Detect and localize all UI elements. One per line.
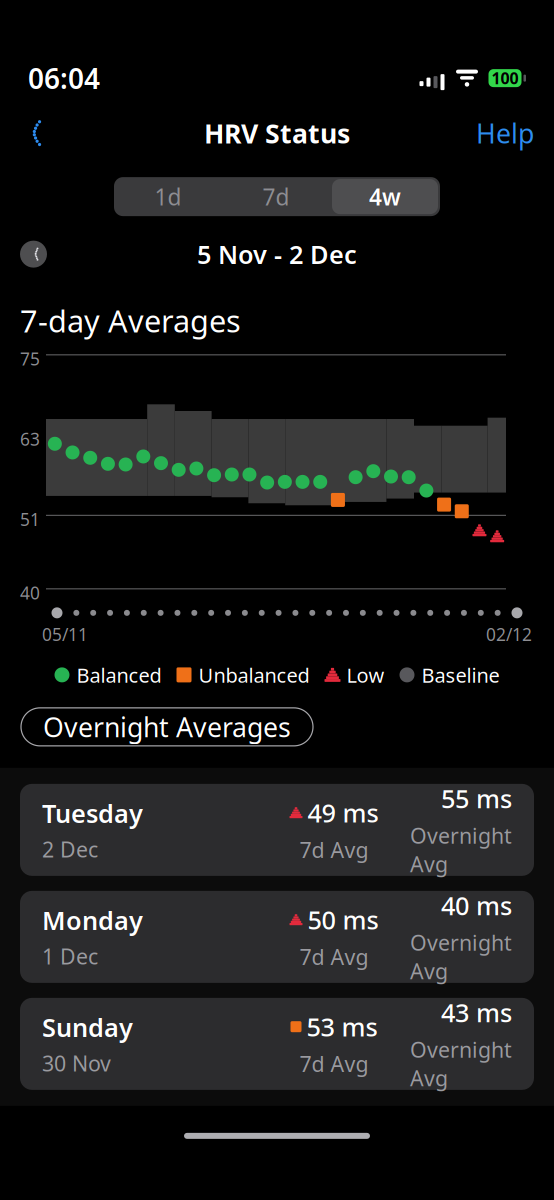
staticText: Monday	[42, 903, 143, 937]
staticText: 49 ms	[307, 796, 378, 829]
staticText: Overnight Avg	[410, 1035, 512, 1092]
staticText: 40	[20, 581, 40, 604]
staticText: Tuesday	[42, 796, 143, 830]
staticText: 53 ms	[306, 1010, 377, 1043]
staticText: 7d Avg	[299, 1049, 368, 1078]
staticText: 5 Nov - 2 Dec	[197, 237, 357, 271]
staticText: Balanced	[76, 662, 161, 688]
staticText: 02/12	[486, 623, 532, 646]
button[interactable]: Monday	[20, 891, 534, 983]
button[interactable]: Previous period	[20, 241, 47, 268]
staticText: 7d Avg	[299, 835, 368, 864]
staticText: Overnight Avg	[410, 821, 512, 878]
staticText: 50 ms	[307, 903, 378, 936]
staticText: 30 Nov	[42, 1049, 111, 1077]
staticText: 55 ms	[441, 782, 512, 815]
staticText: 05/11	[42, 623, 88, 646]
staticText: 7d	[262, 182, 289, 212]
staticText: Unbalanced	[198, 662, 309, 688]
button[interactable]: Tuesday	[20, 784, 534, 876]
staticText: HRV Status	[204, 115, 350, 151]
staticText: Overnight Averages	[43, 709, 291, 745]
staticText: 06:04	[28, 59, 100, 97]
button[interactable]: 7d	[222, 177, 330, 216]
staticText: Baseline	[421, 662, 499, 688]
staticText: Sunday	[42, 1010, 133, 1044]
button[interactable]: 4w	[330, 177, 440, 216]
staticText: 63	[20, 428, 40, 451]
staticText: Help	[476, 115, 534, 151]
staticText: 51	[20, 508, 40, 531]
button[interactable]: Help	[468, 111, 542, 155]
staticText: 1 Dec	[42, 942, 98, 970]
button[interactable]: Sunday	[20, 998, 534, 1090]
staticText: 100	[491, 67, 518, 89]
staticText: Low	[346, 662, 384, 688]
staticText: 75	[20, 347, 40, 370]
button[interactable]: Overnight Averages	[21, 708, 313, 746]
staticText: 43 ms	[441, 996, 512, 1029]
button[interactable]: 1d	[114, 177, 222, 216]
staticText: 1d	[154, 182, 181, 212]
staticText: 7-day Averages	[20, 300, 241, 341]
staticText: Overnight Avg	[410, 928, 512, 985]
staticText: 40 ms	[441, 889, 512, 922]
button[interactable]: Back	[12, 111, 56, 155]
staticText: 2 Dec	[42, 835, 98, 863]
staticText: 7d Avg	[299, 942, 368, 971]
staticText: 4w	[369, 182, 401, 212]
